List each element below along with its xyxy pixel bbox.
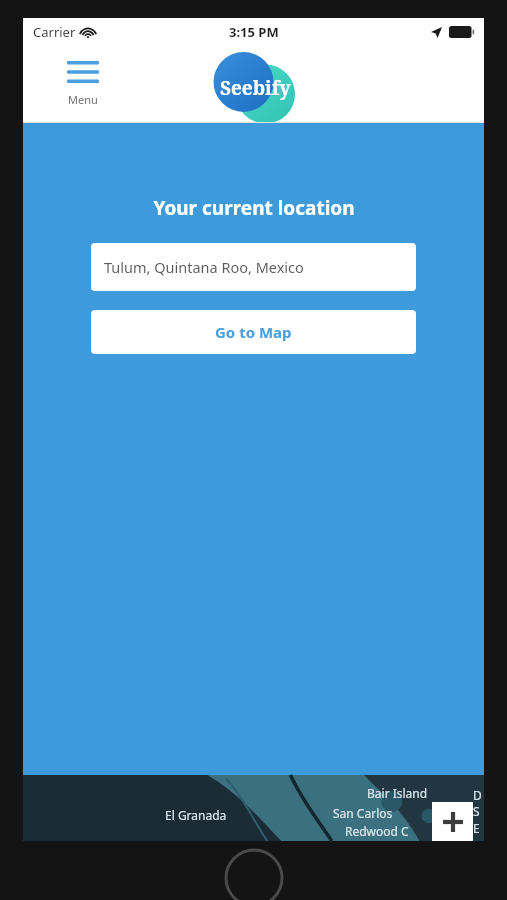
staticText: Menu (68, 92, 98, 107)
staticText: Seebify (220, 75, 291, 101)
staticText: Go to Map (215, 322, 292, 342)
button[interactable]: Menu (63, 59, 103, 109)
staticText: Redwood C (345, 823, 409, 839)
button[interactable]: Tulum, Quintana Roo, Mexico (91, 243, 416, 291)
staticText: Carrier (33, 23, 76, 41)
staticText: Bair Island (367, 785, 428, 801)
staticText: El Granada (165, 807, 227, 823)
button[interactable]: Zoom in (432, 802, 473, 841)
staticText: Tulum, Quintana Roo, Mexico (104, 257, 304, 277)
button[interactable]: Seebify logo (204, 52, 304, 124)
staticText: San Carlos (333, 805, 393, 821)
staticText: 3:15 PM (229, 23, 279, 41)
staticText: D S E (473, 787, 482, 837)
button[interactable]: Go to Map (91, 310, 416, 354)
staticText: Your current location (153, 195, 355, 221)
